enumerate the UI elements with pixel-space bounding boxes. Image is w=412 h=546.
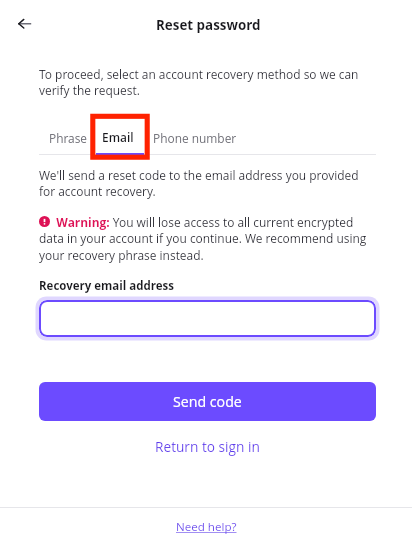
button[interactable]: Send code <box>39 382 376 421</box>
staticText: We'll send a reset code to the email add… <box>39 167 376 200</box>
button[interactable]: Need help? <box>168 515 245 539</box>
staticText: Phrase <box>49 130 88 146</box>
button[interactable] <box>39 300 376 337</box>
staticText: Need help? <box>176 519 237 535</box>
button[interactable]: Email <box>96 121 144 155</box>
button[interactable]: Phone number <box>144 121 247 155</box>
staticText: !Warning: You will lose access to all cu… <box>39 214 376 264</box>
staticText: Phone number <box>153 130 237 146</box>
staticText: Reset password <box>156 16 261 34</box>
button[interactable]: Phrase <box>39 121 96 155</box>
button[interactable]: Return to sign in <box>147 432 268 461</box>
staticText: Send code <box>173 392 242 411</box>
staticText: Return to sign in <box>155 437 260 456</box>
button[interactable]: Back <box>6 5 44 43</box>
staticText: Recovery email address <box>39 278 175 294</box>
staticText: To proceed, select an account recovery m… <box>39 66 376 99</box>
staticText: Email <box>102 129 134 145</box>
